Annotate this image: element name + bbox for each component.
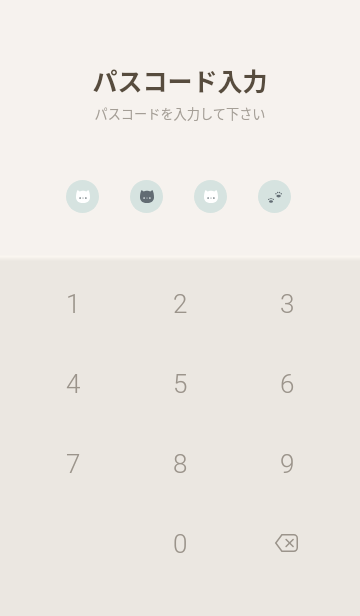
staticText: 5 — [173, 369, 188, 399]
staticText: パスコード入力 — [0, 62, 360, 98]
staticText: 8 — [173, 449, 188, 479]
button[interactable]: 2 — [127, 264, 234, 344]
staticText: パスコードを入力して下さい — [0, 104, 360, 123]
button[interactable]: 5 — [127, 344, 234, 424]
button[interactable]: 3 — [234, 264, 341, 344]
button[interactable]: 6 — [234, 344, 341, 424]
button[interactable]: 7 — [20, 424, 127, 504]
staticText: 4 — [66, 369, 81, 399]
button[interactable]: Delete — [234, 504, 341, 584]
staticText: 2 — [173, 289, 188, 319]
staticText: 7 — [66, 449, 81, 479]
button[interactable]: 8 — [127, 424, 234, 504]
button[interactable]: 0 — [127, 504, 234, 584]
button[interactable]: 9 — [234, 424, 341, 504]
staticText: 0 — [173, 529, 188, 559]
staticText: 9 — [280, 449, 295, 479]
staticText: 1 — [66, 289, 81, 319]
button[interactable]: 4 — [20, 344, 127, 424]
button[interactable]: 1 — [20, 264, 127, 344]
staticText: 6 — [280, 369, 295, 399]
staticText: 3 — [280, 289, 295, 319]
